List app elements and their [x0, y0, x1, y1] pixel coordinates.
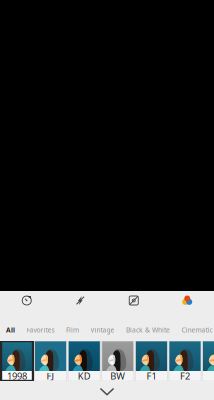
staticText: 1998 — [7, 370, 27, 382]
staticText: KD — [78, 370, 91, 382]
staticText: Cinematic — [181, 326, 212, 334]
button[interactable]: Black & White — [126, 326, 170, 334]
button[interactable]: Hide filters — [0, 385, 214, 399]
staticText: Vintage — [90, 326, 114, 334]
staticText: BW — [110, 370, 125, 382]
button[interactable]: Favorites — [26, 326, 54, 334]
button[interactable]: F1 — [135, 341, 167, 381]
button[interactable]: KD — [68, 341, 100, 381]
button[interactable]: Filters — [160, 291, 214, 310]
staticText: All — [6, 326, 15, 334]
button[interactable]: Vintage — [90, 326, 114, 334]
staticText: F1 — [146, 370, 156, 382]
button[interactable]: BW — [102, 341, 134, 381]
button[interactable]: F2 — [169, 341, 201, 381]
button[interactable]: Flash off — [53, 291, 107, 310]
staticText: Black & White — [126, 326, 170, 334]
button[interactable]: Timer — [0, 291, 53, 310]
staticText: FJ — [47, 370, 55, 382]
staticText: Film — [66, 326, 79, 334]
button[interactable]: FJ — [35, 341, 67, 381]
button[interactable]: Cinematic — [181, 326, 212, 334]
button[interactable]: F3 — [203, 341, 214, 381]
button[interactable]: Live Photo off — [107, 291, 160, 310]
button[interactable]: 1998 — [1, 341, 33, 381]
staticText: F2 — [180, 370, 190, 382]
staticText: Favorites — [26, 326, 54, 334]
button[interactable]: All — [6, 326, 15, 334]
button[interactable]: Film — [66, 326, 79, 334]
